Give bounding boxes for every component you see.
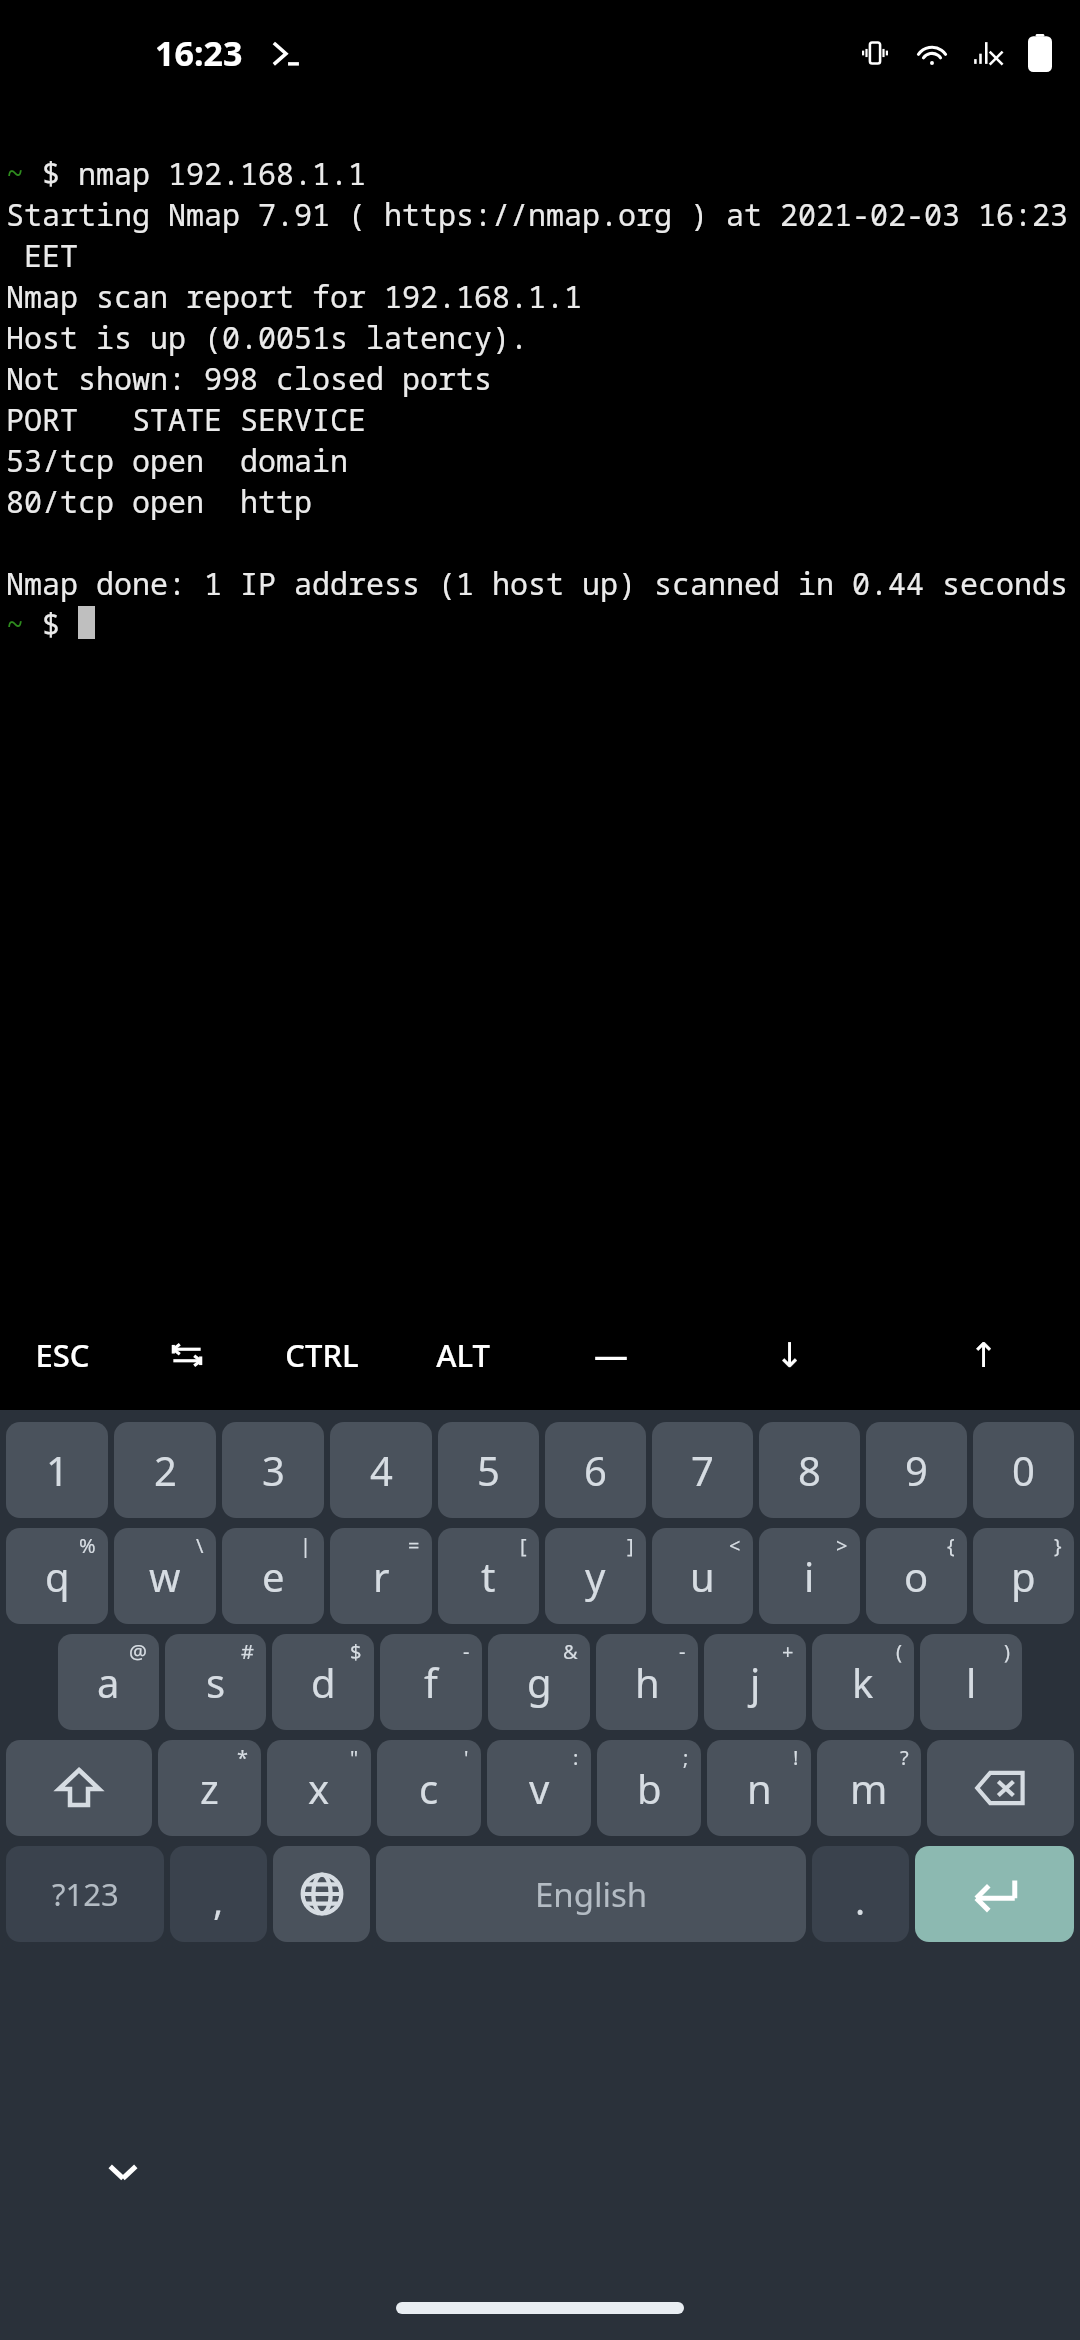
button[interactable]: ~: [6, 153, 1080, 1300]
staticText: >: [836, 1532, 848, 1559]
staticText: 3: [262, 1443, 285, 1497]
staticText: |: [300, 1532, 312, 1559]
staticText: -: [679, 1638, 686, 1665]
staticText: Nmap done: 1 IP address (1 host up) scan…: [6, 563, 1068, 604]
button[interactable]: t: [438, 1528, 539, 1624]
staticText: v: [529, 1761, 550, 1815]
button[interactable]: Change language: [273, 1846, 370, 1942]
staticText: 6: [584, 1443, 607, 1497]
staticText: w: [149, 1549, 181, 1603]
button[interactable]: n: [707, 1740, 811, 1836]
button[interactable]: 7: [652, 1422, 753, 1518]
staticText: CTRL: [285, 1334, 359, 1376]
staticText: 4: [370, 1443, 393, 1497]
button[interactable]: 2: [114, 1422, 216, 1518]
staticText: g: [527, 1655, 552, 1709]
button[interactable]: Hide keyboard: [88, 2137, 158, 2207]
button[interactable]: ESC: [0, 1300, 125, 1410]
button[interactable]: 6: [545, 1422, 646, 1518]
button[interactable]: y: [545, 1528, 646, 1624]
staticText: m: [850, 1761, 888, 1815]
staticText: ↓: [775, 1335, 804, 1375]
button[interactable]: w: [114, 1528, 216, 1624]
button[interactable]: .: [812, 1846, 909, 1942]
button[interactable]: p: [973, 1528, 1074, 1624]
staticText: :: [573, 1744, 579, 1771]
button[interactable]: a: [58, 1634, 159, 1730]
button[interactable]: 0: [973, 1422, 1074, 1518]
staticText: {: [947, 1532, 955, 1559]
staticText: p: [1011, 1549, 1036, 1603]
staticText: EET: [6, 235, 78, 276]
button[interactable]: u: [652, 1528, 753, 1624]
staticText: j: [750, 1655, 761, 1709]
staticText: i: [804, 1549, 815, 1603]
staticText: %: [79, 1532, 96, 1559]
button[interactable]: l: [920, 1634, 1022, 1730]
button[interactable]: g: [488, 1634, 590, 1730]
staticText: =: [408, 1532, 420, 1559]
button[interactable]: ALT: [395, 1300, 530, 1410]
staticText: ': [464, 1744, 469, 1771]
button[interactable]: ↓: [692, 1300, 886, 1410]
button[interactable]: z: [158, 1740, 261, 1836]
button[interactable]: ↑: [886, 1300, 1080, 1410]
staticText: *: [237, 1744, 249, 1771]
staticText: q: [45, 1549, 70, 1603]
staticText: \: [196, 1532, 204, 1559]
button[interactable]: s: [165, 1634, 266, 1730]
staticText: b: [637, 1761, 662, 1815]
staticText: c: [419, 1761, 439, 1815]
staticText: ;: [683, 1744, 689, 1771]
button[interactable]: Enter: [915, 1846, 1074, 1942]
staticText: ]: [627, 1532, 634, 1559]
staticText: 53/tcp open domain: [6, 440, 348, 481]
button[interactable]: 5: [438, 1422, 539, 1518]
button[interactable]: 1: [6, 1422, 108, 1518]
button[interactable]: 8: [759, 1422, 860, 1518]
staticText: r: [373, 1549, 390, 1603]
button[interactable]: o: [866, 1528, 967, 1624]
button[interactable]: j: [704, 1634, 806, 1730]
button[interactable]: 4: [330, 1422, 432, 1518]
staticText: <: [729, 1532, 741, 1559]
button[interactable]: i: [759, 1528, 860, 1624]
button[interactable]: k: [812, 1634, 914, 1730]
button[interactable]: b: [597, 1740, 701, 1836]
staticText: 9: [905, 1443, 928, 1497]
staticText: ": [350, 1744, 359, 1771]
staticText: ALT: [436, 1334, 490, 1376]
button[interactable]: Backspace: [927, 1740, 1074, 1836]
button[interactable]: f: [380, 1634, 482, 1730]
button[interactable]: v: [487, 1740, 591, 1836]
button[interactable]: ,: [170, 1846, 267, 1942]
button[interactable]: q: [6, 1528, 108, 1624]
button[interactable]: h: [596, 1634, 698, 1730]
button[interactable]: ?123: [6, 1846, 164, 1942]
staticText: @: [129, 1638, 147, 1665]
button[interactable]: 9: [866, 1422, 967, 1518]
button[interactable]: m: [817, 1740, 921, 1836]
staticText: d: [311, 1655, 336, 1709]
staticText: 80/tcp open http: [6, 481, 312, 522]
staticText: a: [97, 1655, 120, 1709]
staticText: #: [241, 1638, 254, 1665]
button[interactable]: x: [267, 1740, 371, 1836]
button[interactable]: English: [376, 1846, 806, 1942]
button[interactable]: Shift: [6, 1740, 152, 1836]
staticText: 5: [477, 1443, 500, 1497]
button[interactable]: d: [272, 1634, 374, 1730]
button[interactable]: Tab: [125, 1300, 249, 1410]
button[interactable]: c: [377, 1740, 481, 1836]
button[interactable]: —: [530, 1300, 692, 1410]
staticText: $: [350, 1638, 362, 1665]
staticText: PORT STATE SERVICE: [6, 399, 366, 440]
staticText: ~: [6, 604, 24, 645]
button[interactable]: e: [222, 1528, 324, 1624]
staticText: $ nmap 192.168.1.1: [24, 153, 366, 194]
staticText: ↑: [969, 1335, 998, 1375]
button[interactable]: r: [330, 1528, 432, 1624]
button[interactable]: CTRL: [249, 1300, 395, 1410]
staticText: Nmap scan report for 192.168.1.1: [6, 276, 582, 317]
button[interactable]: 3: [222, 1422, 324, 1518]
